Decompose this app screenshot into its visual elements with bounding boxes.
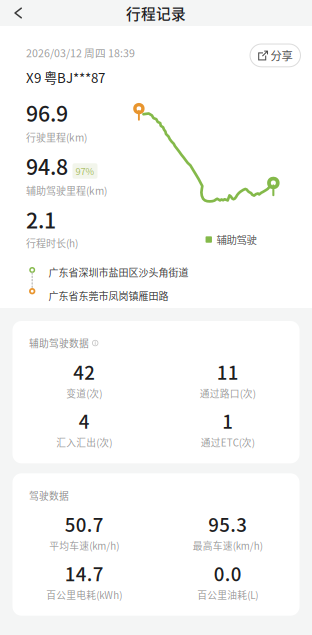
staticText: 0.0 xyxy=(214,560,242,587)
staticText: 50.7 xyxy=(65,510,104,537)
staticText: 行驶里程(km) xyxy=(26,130,87,144)
staticText: 平均车速(km/h) xyxy=(49,538,119,553)
staticText: 14.7 xyxy=(65,560,104,587)
staticText: 97% xyxy=(75,164,94,178)
staticText: 94.8 xyxy=(26,150,68,181)
staticText: 行程记录 xyxy=(126,2,186,24)
staticText: 行程时长(h) xyxy=(26,236,78,250)
staticText: 96.9 xyxy=(26,97,68,128)
staticText: 广东省东莞市凤岗镇雁田路 xyxy=(48,288,168,303)
staticText: 95.3 xyxy=(208,510,247,537)
staticText: 2026/03/12 周四 18:39 xyxy=(26,45,135,60)
staticText: 百公里油耗(L) xyxy=(197,588,258,602)
staticText: 通过路口(次) xyxy=(200,386,256,400)
staticText: 1 xyxy=(222,407,233,434)
staticText: 百公里电耗(kWh) xyxy=(46,588,122,602)
staticText: 2.1 xyxy=(26,204,56,235)
button[interactable]: Back xyxy=(0,0,36,26)
staticText: 42 xyxy=(73,358,95,385)
staticText: 变道(次) xyxy=(66,386,102,400)
staticText: 驾驶数据 xyxy=(29,488,69,502)
staticText: 辅助驾驶里程(km) xyxy=(26,183,107,198)
staticText: 广东省深圳市盐田区沙头角街道 xyxy=(48,265,188,279)
staticText: 最高车速(km/h) xyxy=(193,538,263,553)
staticText: 辅助驾驶数据 xyxy=(29,336,89,350)
staticText: 11 xyxy=(217,358,239,385)
staticText: 通过ETC(次) xyxy=(201,435,255,449)
staticText: 辅助驾驶 xyxy=(216,232,256,247)
staticText: X9 粤BJ***87 xyxy=(26,67,105,87)
button[interactable]: 分享 xyxy=(250,44,300,67)
staticText: 分享 xyxy=(270,47,292,64)
staticText: 汇入汇出(次) xyxy=(56,435,112,449)
staticText: 4 xyxy=(79,407,90,434)
